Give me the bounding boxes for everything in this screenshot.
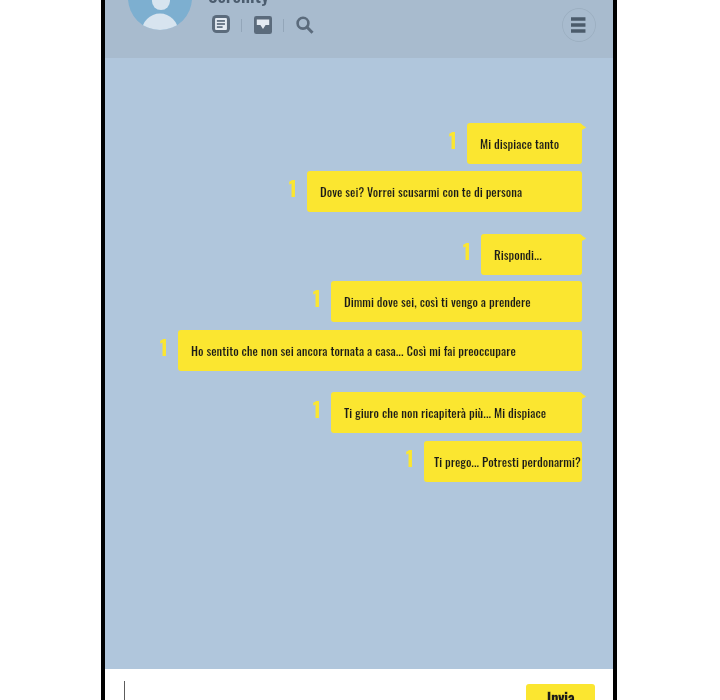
button[interactable]: Rispondi... <box>481 234 582 275</box>
staticText: 1 <box>313 394 321 424</box>
button[interactable]: Notes <box>212 15 230 33</box>
button[interactable]: Inbox <box>254 16 272 34</box>
staticText: 1 <box>406 443 414 473</box>
staticText: 1 <box>313 283 321 313</box>
staticText: Rispondi... <box>494 246 542 264</box>
staticText: Ti giuro che non ricapiterà più... Mi di… <box>344 404 547 422</box>
staticText: 1 <box>160 332 168 362</box>
button[interactable]: Mi dispiace tanto <box>467 123 582 164</box>
button[interactable]: Search <box>295 13 317 35</box>
staticText: 1 <box>449 125 457 155</box>
staticText: Ti prego... Potresti perdonarmi? <box>434 453 581 471</box>
button[interactable]: Menu <box>562 8 596 42</box>
staticText: Ho sentito che non sei ancora tornata a … <box>191 342 516 360</box>
button[interactable]: Ho sentito che non sei ancora tornata a … <box>178 330 582 371</box>
staticText: 1 <box>289 173 297 203</box>
button[interactable]: Dove sei? Vorrei scusarmi con te di pers… <box>307 171 582 212</box>
staticText: Invia <box>547 686 575 700</box>
button[interactable]: Profile picture <box>128 0 192 30</box>
staticText: 1 <box>463 236 471 266</box>
button[interactable]: Dimmi dove sei, così ti vengo a prendere <box>331 281 582 322</box>
button[interactable]: Invia <box>526 684 595 700</box>
staticText: Mi dispiace tanto <box>480 135 560 153</box>
button[interactable]: Ti prego... Potresti perdonarmi? <box>424 441 582 482</box>
staticText: Dimmi dove sei, così ti vengo a prendere <box>344 293 531 311</box>
button[interactable]: Ti giuro che non ricapiterà più... Mi di… <box>331 392 582 433</box>
staticText: Dove sei? Vorrei scusarmi con te di pers… <box>320 183 523 201</box>
staticText: Serenity <box>208 0 269 6</box>
